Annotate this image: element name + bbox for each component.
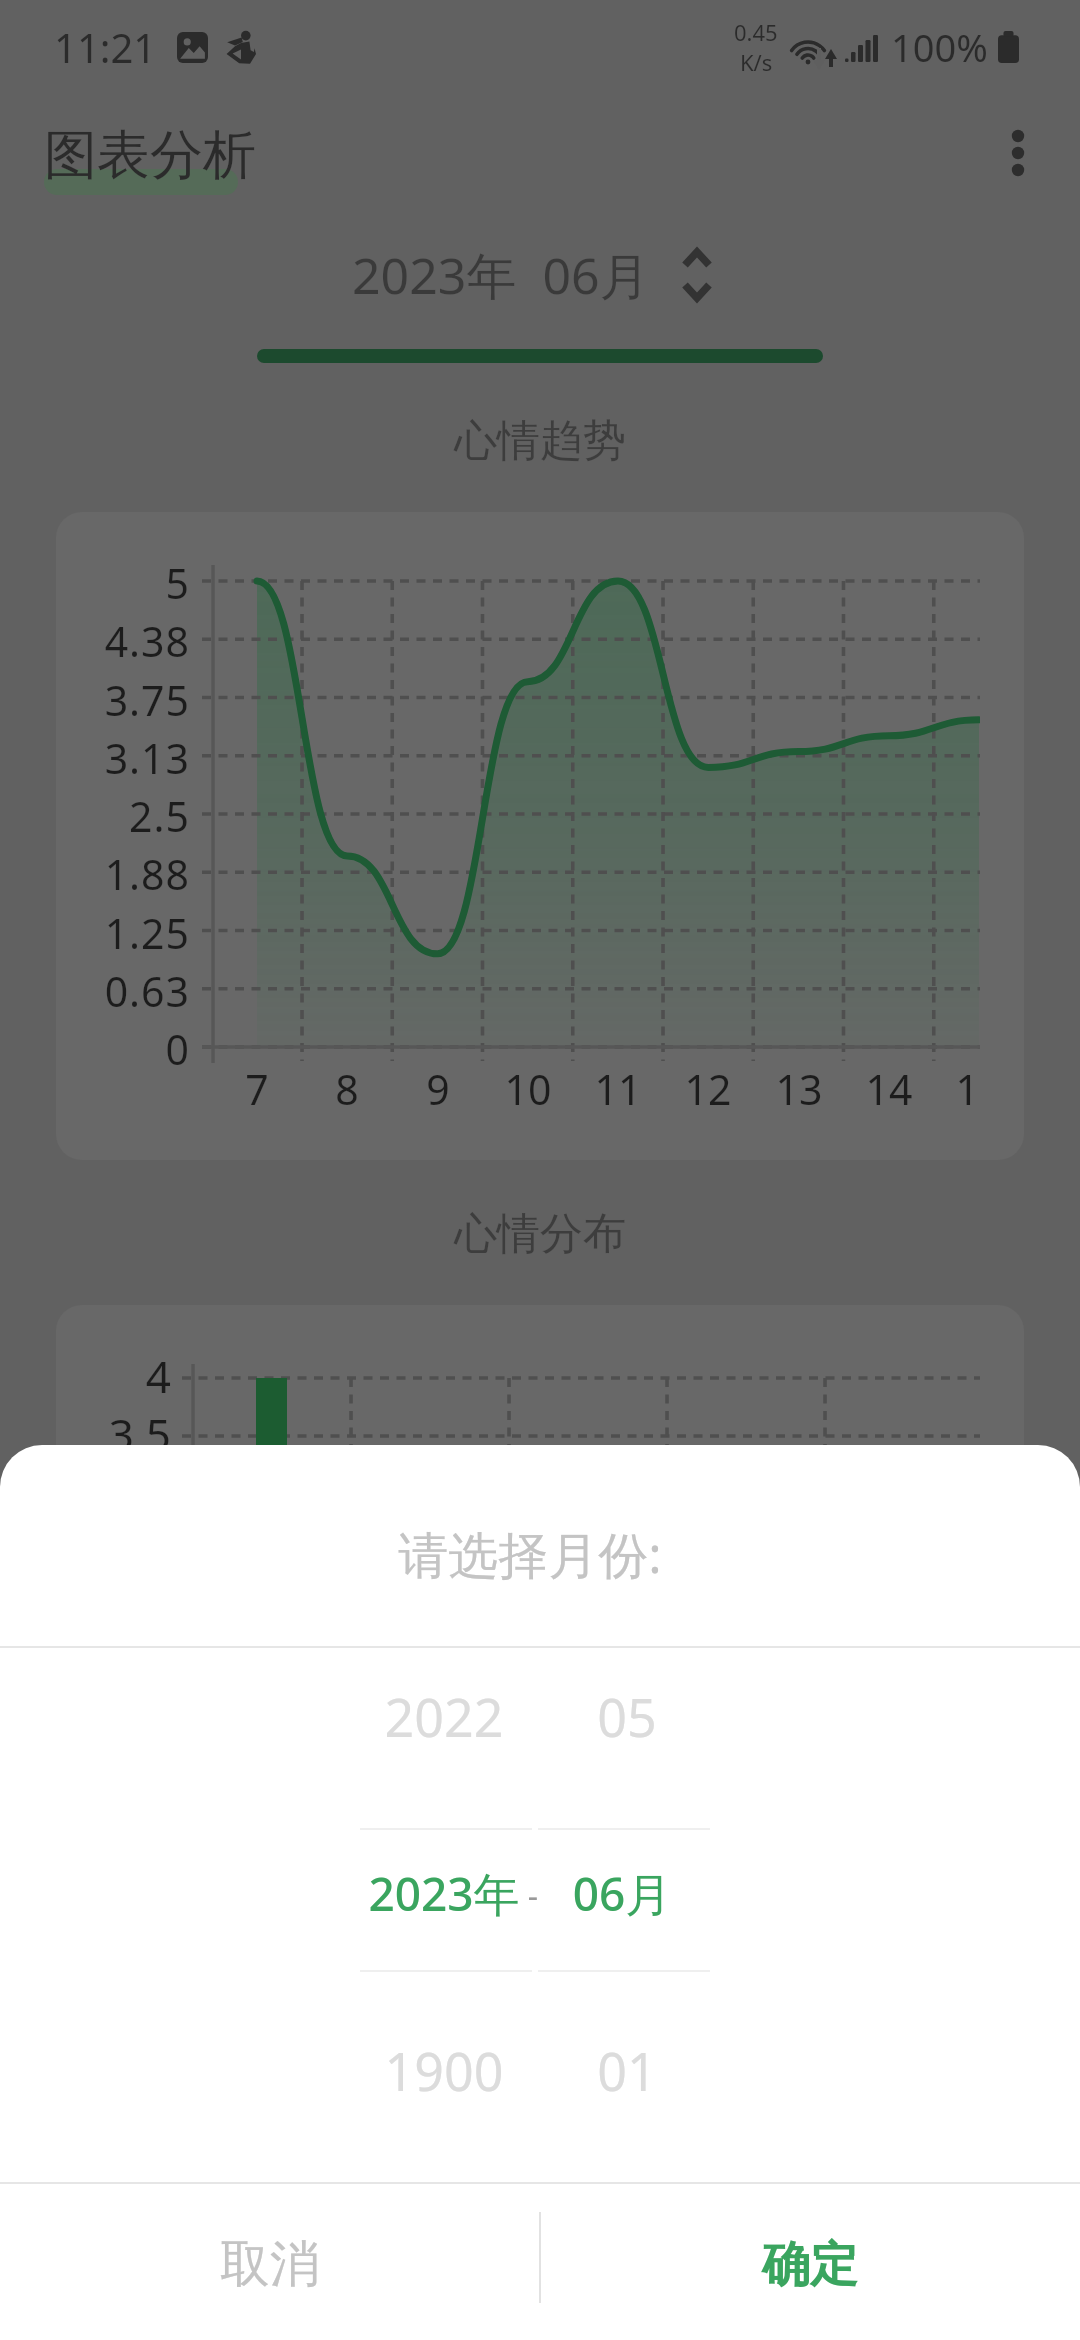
staticText: 取消 bbox=[220, 2233, 320, 2296]
staticText: 2022 bbox=[324, 1681, 564, 1752]
staticText: 13 bbox=[754, 1061, 844, 1117]
staticText: 3.13 bbox=[56, 730, 190, 786]
button[interactable]: 取消 bbox=[0, 2189, 540, 2340]
staticText: 0.63 bbox=[56, 963, 190, 1019]
staticText: 10 bbox=[483, 1061, 573, 1117]
button[interactable]: 2023年 06月 bbox=[328, 233, 736, 317]
staticText: 1.88 bbox=[56, 846, 190, 902]
staticText: 2023年 06月 bbox=[352, 241, 650, 309]
button[interactable]: More options bbox=[978, 113, 1058, 193]
staticText: 100% bbox=[891, 21, 988, 73]
staticText: 2.5 bbox=[56, 788, 190, 844]
staticText: 3.5 bbox=[56, 1404, 171, 1464]
staticText: 7 bbox=[212, 1061, 302, 1117]
staticText: 01 bbox=[507, 2035, 747, 2106]
staticText: 5 bbox=[56, 555, 190, 611]
staticText: 11 bbox=[573, 1061, 663, 1117]
staticText: 确定 bbox=[762, 2235, 858, 2295]
staticText: 2023年 bbox=[324, 1862, 564, 1925]
staticText: 4 bbox=[56, 1346, 171, 1406]
staticText: - bbox=[505, 1874, 561, 1918]
staticText: 11:21 bbox=[54, 20, 157, 74]
staticText: 1900 bbox=[324, 2035, 564, 2106]
staticText: 14 bbox=[844, 1061, 934, 1117]
button[interactable]: 确定 bbox=[540, 2189, 1080, 2340]
staticText: 8 bbox=[302, 1061, 392, 1117]
staticText: K/s bbox=[740, 47, 773, 77]
staticText: 06月 bbox=[502, 1862, 742, 1925]
staticText: 0 bbox=[56, 1021, 190, 1077]
staticText: 15 bbox=[934, 1061, 980, 1117]
staticText: 心情趋势 bbox=[0, 414, 1080, 468]
staticText: 图表分析 bbox=[44, 122, 256, 189]
staticText: 请选择月份: bbox=[0, 1520, 1070, 1588]
staticText: 心情分布 bbox=[0, 1207, 1080, 1261]
staticText: 4.38 bbox=[56, 613, 190, 669]
staticText: 12 bbox=[663, 1061, 753, 1117]
staticText: 05 bbox=[507, 1681, 747, 1752]
staticText: 1.25 bbox=[56, 905, 190, 961]
staticText: 0.45 bbox=[734, 17, 778, 47]
staticText: 3.75 bbox=[56, 672, 190, 728]
staticText: 9 bbox=[393, 1061, 483, 1117]
